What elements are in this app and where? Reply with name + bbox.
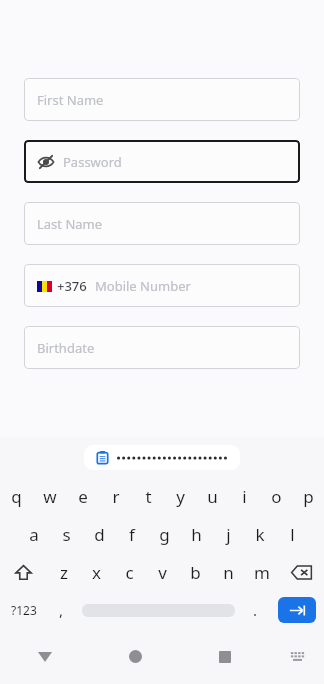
staticText: o: [271, 485, 282, 508]
button[interactable]: Keyboard: [270, 629, 324, 684]
button[interactable]: First Name: [24, 78, 300, 121]
button[interactable]: t: [132, 477, 164, 515]
button[interactable]: v: [146, 553, 179, 591]
button[interactable]: y: [164, 477, 196, 515]
staticText: Mobile Number: [95, 277, 191, 295]
staticText: p: [303, 485, 314, 508]
staticText: x: [92, 561, 101, 584]
staticText: b: [190, 561, 201, 584]
staticText: u: [207, 485, 218, 508]
staticText: c: [125, 561, 134, 584]
button[interactable]: Home: [90, 629, 180, 684]
button[interactable]: ?123: [0, 591, 47, 629]
staticText: r: [112, 485, 120, 508]
staticText: h: [191, 523, 202, 546]
button[interactable]: Next: [278, 597, 316, 623]
button[interactable]: h: [180, 515, 212, 553]
button[interactable]: Back: [0, 629, 90, 684]
button[interactable]: c: [113, 553, 146, 591]
button[interactable]: .: [241, 591, 270, 629]
staticText: .: [253, 600, 258, 620]
staticText: ,: [59, 600, 64, 620]
staticText: +376: [57, 277, 87, 295]
button[interactable]: Backspace: [278, 553, 324, 591]
button[interactable]: k: [244, 515, 276, 553]
button[interactable]: Last Name: [24, 202, 300, 245]
staticText: t: [145, 485, 152, 508]
button[interactable]: n: [212, 553, 245, 591]
staticText: j: [226, 523, 231, 546]
button[interactable]: b: [179, 553, 212, 591]
button[interactable]: Show password: [24, 140, 300, 183]
button[interactable]: a: [17, 515, 50, 553]
button[interactable]: e: [66, 477, 99, 515]
button[interactable]: w: [33, 477, 66, 515]
button[interactable]: f: [116, 515, 148, 553]
button[interactable]: g: [148, 515, 180, 553]
staticText: f: [129, 523, 135, 546]
staticText: z: [60, 561, 68, 584]
staticText: First Name: [37, 91, 104, 109]
staticText: l: [290, 523, 295, 546]
staticText: n: [223, 561, 234, 584]
staticText: Password: [63, 153, 122, 171]
button[interactable]: Clipboard: [84, 445, 240, 470]
other: Show password: [37, 153, 55, 171]
staticText: a: [29, 523, 39, 546]
staticText: s: [62, 523, 71, 546]
button[interactable]: o: [260, 477, 292, 515]
button[interactable]: z: [47, 553, 80, 591]
button[interactable]: l: [276, 515, 308, 553]
staticText: Last Name: [37, 215, 103, 233]
staticText: m: [254, 561, 270, 584]
staticText: y: [176, 485, 185, 508]
button[interactable]: s: [50, 515, 83, 553]
button[interactable]: i: [228, 477, 260, 515]
button[interactable]: q: [0, 477, 33, 515]
button[interactable]: r: [99, 477, 132, 515]
button[interactable]: Space: [76, 591, 241, 629]
button[interactable]: Recents: [180, 629, 270, 684]
staticText: d: [94, 523, 105, 546]
button[interactable]: d: [83, 515, 116, 553]
staticText: g: [159, 523, 170, 546]
staticText: k: [255, 523, 265, 546]
staticText: i: [242, 485, 247, 508]
button[interactable]: x: [80, 553, 113, 591]
button[interactable]: Shift: [0, 553, 47, 591]
button[interactable]: Birthdate: [24, 326, 300, 369]
staticText: w: [43, 485, 57, 508]
button[interactable]: +376: [24, 264, 300, 307]
staticText: v: [158, 561, 167, 584]
other: Clipboard: [96, 451, 109, 464]
staticText: Birthdate: [37, 339, 95, 357]
button[interactable]: j: [212, 515, 244, 553]
staticText: e: [78, 485, 88, 508]
button[interactable]: p: [292, 477, 324, 515]
button[interactable]: m: [245, 553, 278, 591]
staticText: ?123: [11, 602, 37, 618]
button[interactable]: ,: [47, 591, 76, 629]
button[interactable]: u: [196, 477, 228, 515]
staticText: q: [11, 485, 22, 508]
